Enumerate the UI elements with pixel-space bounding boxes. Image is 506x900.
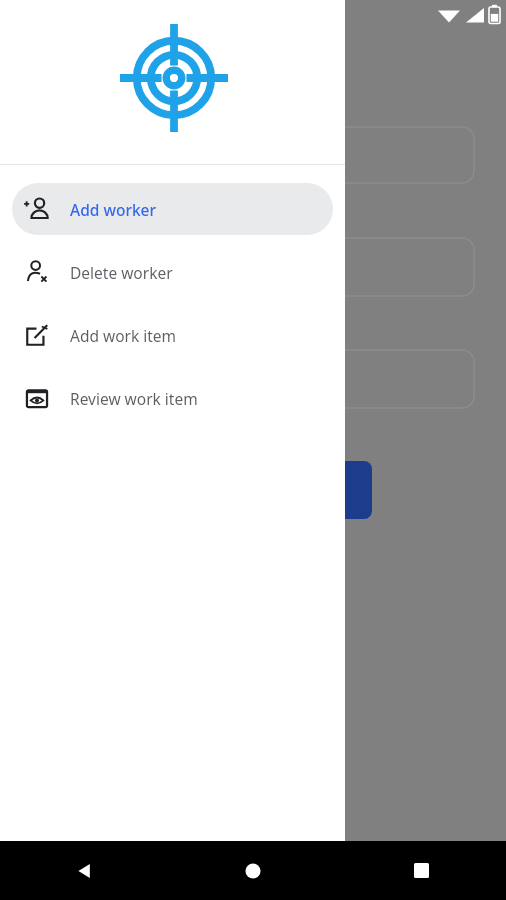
button[interactable]: Delete worker [12, 246, 333, 298]
button[interactable]: Back [0, 841, 169, 900]
staticText: Delete worker [70, 262, 173, 283]
button[interactable]: Home [0, 841, 506, 900]
other: App logo [120, 24, 228, 132]
staticText: Add work item [70, 325, 177, 346]
button[interactable]: Review work item [12, 372, 333, 424]
button[interactable]: Add worker [12, 183, 333, 235]
button[interactable]: Add work item [12, 309, 333, 361]
button[interactable]: Recent apps [337, 841, 506, 900]
staticText: Review work item [70, 388, 198, 409]
staticText: Add worker [70, 199, 157, 220]
